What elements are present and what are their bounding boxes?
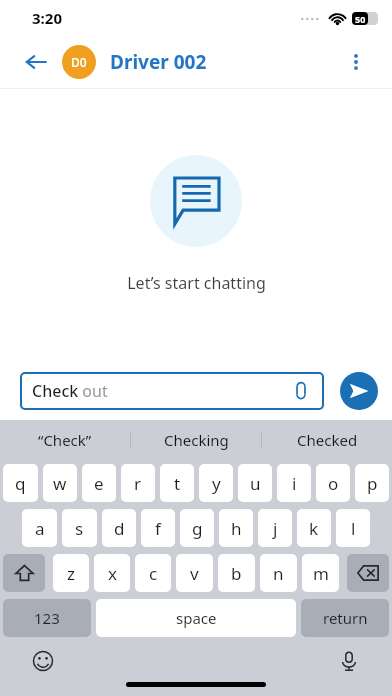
button[interactable]: m <box>302 554 339 592</box>
staticText: 50 <box>355 13 366 25</box>
staticText: “Check” <box>38 430 92 450</box>
staticText: o <box>328 472 339 495</box>
staticText: t <box>174 472 181 495</box>
button[interactable]: n <box>260 554 297 592</box>
staticText: k <box>309 517 319 540</box>
staticText: g <box>192 517 203 540</box>
button[interactable]: o <box>316 464 350 502</box>
button[interactable]: y <box>199 464 233 502</box>
staticText: p <box>367 472 378 495</box>
staticText: z <box>67 562 75 585</box>
button[interactable]: d <box>102 509 136 547</box>
button[interactable]: k <box>297 509 331 547</box>
button[interactable]: D0 <box>62 45 96 79</box>
staticText: e <box>94 472 104 495</box>
button[interactable]: r <box>121 464 155 502</box>
button[interactable]: c <box>135 554 171 592</box>
button[interactable]: g <box>180 509 214 547</box>
button[interactable]: Back <box>18 44 54 80</box>
button[interactable]: p <box>355 464 389 502</box>
button[interactable]: Driver 002 <box>110 49 207 75</box>
button[interactable]: s <box>62 509 97 547</box>
staticText: u <box>250 472 261 495</box>
staticText: m <box>313 562 329 585</box>
button[interactable]: Send <box>340 372 378 410</box>
staticText: 123 <box>34 608 60 628</box>
staticText: 3:20 <box>32 8 62 28</box>
button[interactable]: i <box>277 464 311 502</box>
button[interactable]: v <box>176 554 213 592</box>
staticText: q <box>15 472 26 495</box>
button[interactable]: Shift <box>3 554 45 592</box>
button[interactable]: x <box>94 554 130 592</box>
staticText: Check out <box>32 380 108 402</box>
button[interactable]: Backspace <box>347 554 389 592</box>
button[interactable]: “Check” <box>0 420 130 460</box>
button[interactable]: Checked <box>262 420 392 460</box>
staticText: y <box>212 472 221 495</box>
staticText: x <box>108 562 117 585</box>
staticText: v <box>190 562 199 585</box>
staticText: r <box>134 472 142 495</box>
button[interactable]: h <box>219 509 253 547</box>
button[interactable]: j <box>258 509 292 547</box>
button[interactable]: e <box>82 464 116 502</box>
button[interactable]: u <box>238 464 272 502</box>
button[interactable]: w <box>43 464 77 502</box>
staticText: l <box>351 517 356 540</box>
staticText: b <box>231 562 242 585</box>
staticText: c <box>149 562 158 585</box>
button[interactable]: return <box>301 599 389 637</box>
button[interactable]: More options <box>338 44 374 80</box>
button[interactable]: q <box>3 464 38 502</box>
staticText: a <box>35 517 45 540</box>
staticText: space <box>176 608 217 628</box>
staticText: n <box>273 562 284 585</box>
button[interactable]: b <box>218 554 255 592</box>
button[interactable]: f <box>141 509 175 547</box>
button[interactable]: a <box>22 509 57 547</box>
button[interactable]: Dictation <box>334 646 364 676</box>
button[interactable]: l <box>336 509 370 547</box>
staticText: d <box>114 517 125 540</box>
button[interactable]: Attach file <box>290 380 312 402</box>
staticText: Checked <box>297 430 358 450</box>
button[interactable]: space <box>96 599 296 637</box>
staticText: Checking <box>164 430 229 450</box>
staticText: i <box>292 472 297 495</box>
staticText: Let’s start chatting <box>127 272 266 294</box>
button[interactable]: t <box>160 464 194 502</box>
button[interactable]: Emoji <box>28 646 58 676</box>
staticText: j <box>273 517 278 540</box>
staticText: h <box>231 517 242 540</box>
button[interactable]: Check out <box>20 372 324 410</box>
staticText: f <box>155 517 161 540</box>
staticText: s <box>75 517 84 540</box>
staticText: D0 <box>71 54 87 70</box>
button[interactable]: 123 <box>3 599 91 637</box>
staticText: w <box>53 472 67 495</box>
button[interactable]: z <box>53 554 89 592</box>
staticText: return <box>323 608 368 628</box>
button[interactable]: Checking <box>131 420 261 460</box>
